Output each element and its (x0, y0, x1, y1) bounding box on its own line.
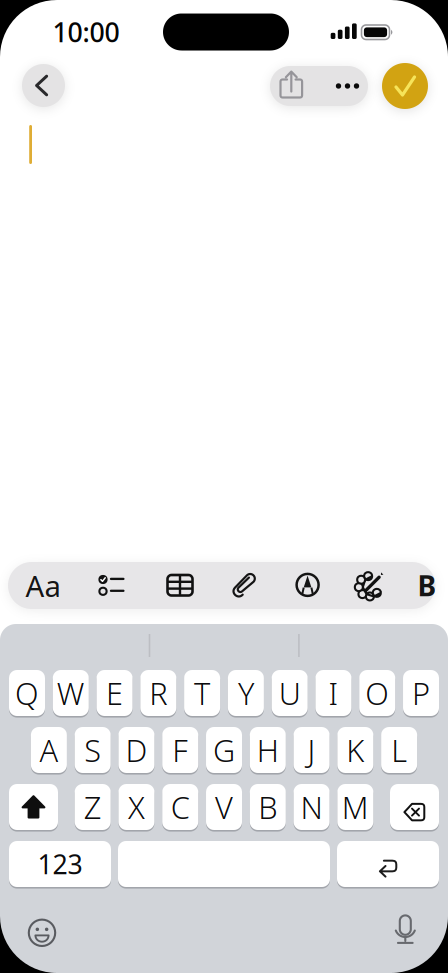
staticText: Z (84, 787, 102, 827)
button[interactable]: 123 (9, 841, 111, 887)
button[interactable] (158, 562, 202, 609)
staticText: X (128, 787, 145, 827)
staticText: Y (238, 673, 254, 713)
button[interactable]: Z (75, 784, 111, 830)
button[interactable] (390, 784, 439, 830)
staticText: M (342, 787, 369, 827)
button[interactable] (118, 841, 330, 887)
button[interactable]: N (294, 784, 330, 830)
button[interactable]: D (118, 727, 154, 773)
button[interactable] (346, 562, 392, 609)
staticText: K (346, 730, 364, 770)
button[interactable]: L (381, 727, 417, 773)
staticText: N (301, 787, 323, 827)
staticText: D (125, 730, 147, 770)
staticText: S (84, 730, 101, 770)
staticText: A (39, 730, 58, 770)
button[interactable] (270, 66, 319, 106)
staticText: H (257, 730, 279, 770)
button[interactable]: M (337, 784, 373, 830)
button[interactable] (285, 562, 329, 609)
staticText: 123 (37, 846, 82, 882)
button[interactable]: B (250, 784, 286, 830)
staticText: C (171, 787, 190, 827)
staticText: U (279, 673, 301, 713)
staticText: T (194, 673, 210, 713)
staticText: E (106, 673, 123, 713)
button[interactable]: I (315, 670, 351, 716)
button[interactable]: R (140, 670, 176, 716)
staticText: Q (15, 673, 39, 713)
button[interactable] (22, 913, 62, 953)
button[interactable]: E (97, 670, 133, 716)
button[interactable]: J (294, 727, 330, 773)
button[interactable]: C (162, 784, 198, 830)
staticText: I (328, 673, 338, 713)
button[interactable]: S (75, 727, 111, 773)
button[interactable] (88, 562, 132, 609)
button[interactable]: G (206, 727, 242, 773)
staticText: O (365, 673, 389, 713)
button[interactable]: A (31, 727, 67, 773)
button[interactable]: Y (228, 670, 264, 716)
staticText: B (258, 787, 277, 827)
button[interactable]: X (118, 784, 154, 830)
button[interactable]: O (359, 670, 395, 716)
button[interactable] (22, 64, 65, 107)
staticText: 10:00 (52, 14, 119, 50)
button[interactable] (319, 66, 368, 106)
staticText: J (308, 730, 316, 770)
staticText: P (412, 673, 430, 713)
button[interactable]: F (162, 727, 198, 773)
button[interactable]: T (184, 670, 220, 716)
button[interactable]: B (415, 562, 439, 609)
staticText: R (149, 673, 167, 713)
button[interactable]: P (403, 670, 439, 716)
staticText: W (57, 673, 85, 713)
button[interactable] (337, 841, 439, 887)
staticText: L (391, 730, 407, 770)
button[interactable]: H (250, 727, 286, 773)
button[interactable] (385, 910, 425, 954)
button[interactable]: Aa (17, 562, 69, 609)
button[interactable]: Q (9, 670, 45, 716)
button[interactable]: K (337, 727, 373, 773)
button[interactable] (382, 63, 428, 109)
button[interactable] (9, 784, 58, 830)
button[interactable] (224, 562, 268, 609)
button[interactable]: V (206, 784, 242, 830)
staticText: G (213, 730, 235, 770)
staticText: F (172, 730, 188, 770)
button[interactable]: W (53, 670, 89, 716)
staticText: B (417, 567, 436, 604)
button[interactable]: U (272, 670, 308, 716)
staticText: V (215, 787, 233, 827)
staticText: Aa (25, 566, 60, 605)
